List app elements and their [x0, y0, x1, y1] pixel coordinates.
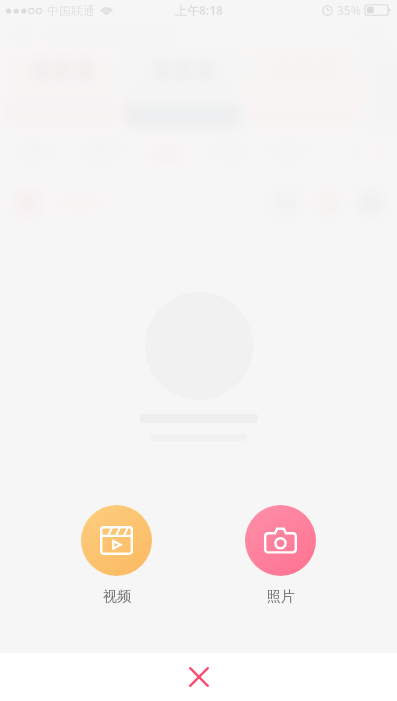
button[interactable]: 拍摄照片	[241, 503, 320, 608]
staticText: 中国联通	[47, 3, 95, 18]
staticText: 照片	[267, 588, 295, 606]
button[interactable]: 录制视频	[77, 503, 156, 608]
button[interactable]: 关闭	[0, 653, 397, 701]
staticText: 上午8:18	[175, 2, 223, 18]
staticText: 35%	[337, 2, 361, 18]
staticText: 视频	[103, 588, 131, 606]
